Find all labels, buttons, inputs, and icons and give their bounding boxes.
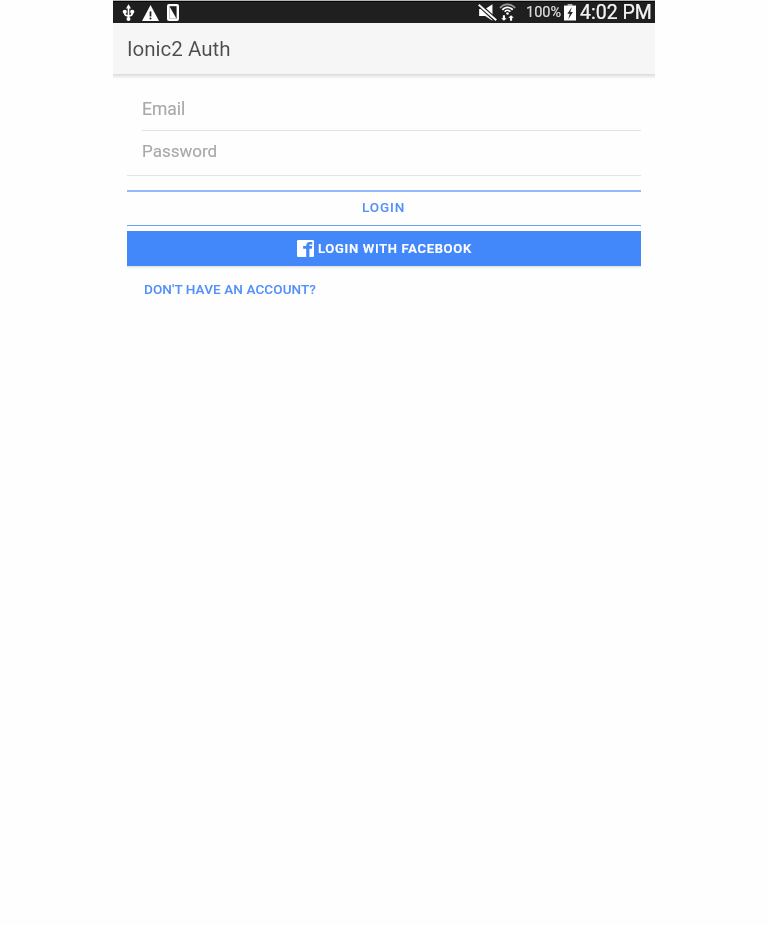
other: No SIM card: [167, 4, 179, 21]
other: USB connected: [123, 4, 134, 21]
staticText: DON'T HAVE AN ACCOUNT?: [144, 281, 317, 297]
other: Silent mode: [478, 4, 497, 21]
other: Warning: [142, 5, 159, 21]
button[interactable]: Email: [127, 87, 641, 131]
staticText: Password: [142, 141, 218, 161]
button[interactable]: DON'T HAVE AN ACCOUNT?: [137, 279, 324, 301]
button[interactable]: Password: [127, 129, 641, 176]
staticText: Email: [142, 99, 186, 120]
button[interactable]: LOGIN WITH FACEBOOK: [127, 231, 641, 266]
staticText: LOGIN: [362, 199, 406, 215]
staticText: LOGIN WITH FACEBOOK: [318, 241, 472, 256]
other: Battery charging, 100 percent: [564, 4, 576, 21]
button[interactable]: LOGIN: [127, 190, 641, 226]
other: Wi-Fi: [499, 4, 516, 21]
staticText: Ionic2 Auth: [127, 37, 231, 61]
staticText: 4:02 PM: [580, 1, 652, 23]
staticText: 100%: [526, 4, 562, 21]
